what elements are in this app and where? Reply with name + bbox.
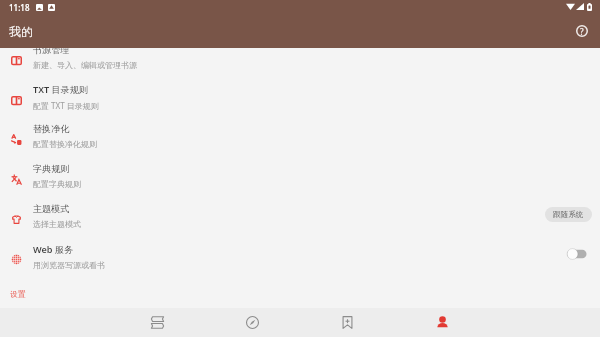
button[interactable]: 书源管理 bbox=[0, 37, 600, 77]
button[interactable]: 帮助 bbox=[571, 20, 593, 42]
staticText: 11:18 bbox=[9, 2, 30, 13]
staticText: 我的 bbox=[9, 24, 33, 39]
staticText: 配置字典规则 bbox=[33, 179, 81, 189]
staticText: 跟随系统 bbox=[553, 210, 584, 220]
button[interactable]: TXT 目录规则 bbox=[0, 77, 600, 117]
button[interactable]: 书架 bbox=[110, 308, 205, 337]
button[interactable]: 订阅 bbox=[300, 308, 395, 337]
staticText: 配置 TXT 目录规则 bbox=[33, 100, 99, 111]
button[interactable]: 发现 bbox=[205, 308, 300, 337]
staticText: 配置替换净化规则 bbox=[33, 139, 97, 149]
button[interactable]: Web 服务 bbox=[0, 236, 600, 276]
button[interactable]: 主题模式 bbox=[0, 196, 600, 236]
button[interactable]: 跟随系统 bbox=[545, 207, 592, 222]
button[interactable]: 字典规则 bbox=[0, 156, 600, 196]
staticText: TXT 目录规则 bbox=[33, 83, 88, 95]
button[interactable]: 我的 bbox=[395, 308, 490, 337]
staticText: 字典规则 bbox=[33, 163, 70, 174]
staticText: Web 服务 bbox=[33, 243, 74, 255]
staticText: 书源管理 bbox=[33, 44, 70, 55]
staticText: 新建、导入、编辑或管理书源 bbox=[33, 60, 137, 70]
staticText: ? bbox=[580, 26, 584, 37]
button[interactable]: 替换净化 bbox=[0, 116, 600, 156]
staticText: 用浏览器写源或看书 bbox=[33, 260, 105, 270]
staticText: 选择主题模式 bbox=[33, 219, 81, 229]
staticText: 设置 bbox=[10, 289, 26, 299]
button[interactable]: Web 服务开关 bbox=[565, 246, 589, 262]
staticText: 主题模式 bbox=[33, 203, 70, 214]
staticText: 替换净化 bbox=[33, 123, 70, 134]
